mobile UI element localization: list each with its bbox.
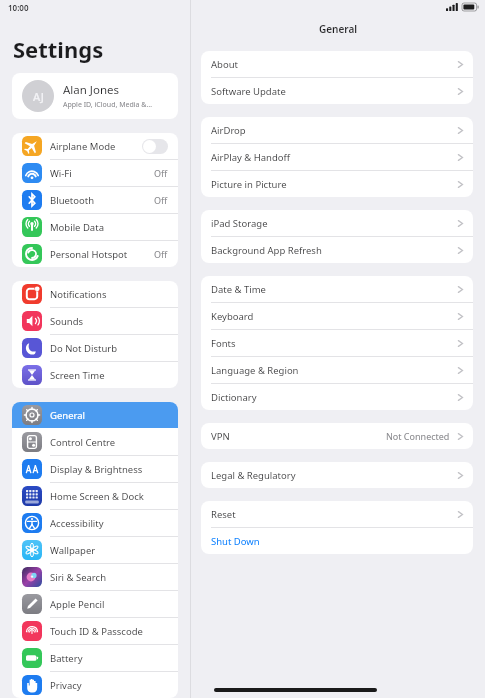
button[interactable]: Battery — [12, 645, 178, 671]
button[interactable]: Apple Pencil — [12, 591, 178, 617]
staticText: Screen Time — [50, 369, 168, 382]
staticText: Legal & Regulatory — [211, 469, 457, 482]
button[interactable]: Control Centre — [12, 429, 178, 455]
staticText: Language & Region — [211, 364, 457, 377]
staticText: Fonts — [211, 337, 457, 350]
staticText: Touch ID & Passcode — [50, 625, 168, 638]
staticText: AirPlay & Handoff — [211, 151, 457, 164]
staticText: Privacy — [50, 679, 168, 692]
staticText: Background App Refresh — [211, 244, 457, 257]
button[interactable]: Mobile Data — [12, 214, 178, 240]
staticText: Reset — [211, 508, 457, 521]
staticText: Wi-Fi — [50, 167, 154, 180]
button[interactable]: Language & Region — [201, 357, 473, 383]
staticText: Apple Pencil — [50, 598, 168, 611]
staticText: VPN — [211, 430, 386, 443]
button[interactable]: Background App Refresh — [201, 237, 473, 263]
staticText: Date & Time — [211, 283, 457, 296]
button[interactable]: Accessibility — [12, 510, 178, 536]
button[interactable]: Wallpaper — [12, 537, 178, 563]
button[interactable]: Legal & Regulatory — [201, 462, 473, 488]
staticText: 10:00 — [8, 2, 29, 13]
staticText: Dictionary — [211, 391, 457, 404]
staticText: Apple ID, iCloud, Media &… — [63, 100, 152, 110]
button[interactable]: iPad Storage — [201, 210, 473, 236]
button[interactable]: Privacy — [12, 672, 178, 698]
button[interactable]: Date & Time — [201, 276, 473, 302]
staticText: Personal Hotspot — [50, 248, 154, 261]
staticText: Do Not Disturb — [50, 342, 168, 355]
button[interactable]: Touch ID & Passcode — [12, 618, 178, 644]
staticText: Off — [154, 194, 168, 206]
staticText: Wallpaper — [50, 544, 168, 557]
button[interactable]: AJ — [12, 73, 178, 119]
button[interactable]: Fonts — [201, 330, 473, 356]
button[interactable]: Dictionary — [201, 384, 473, 410]
staticText: General — [191, 22, 485, 36]
staticText: Battery — [50, 652, 168, 665]
button[interactable]: Display & Brightness — [12, 456, 178, 482]
staticText: Off — [154, 167, 168, 179]
button[interactable]: Keyboard — [201, 303, 473, 329]
staticText: iPad Storage — [211, 217, 457, 230]
staticText: AirDrop — [211, 124, 457, 137]
staticText: Picture in Picture — [211, 178, 457, 191]
staticText: Mobile Data — [50, 221, 168, 234]
button[interactable]: Software Update — [201, 78, 473, 104]
staticText: Airplane Mode — [50, 140, 142, 153]
button[interactable]: General — [12, 402, 178, 428]
staticText: Bluetooth — [50, 194, 154, 207]
button[interactable]: Reset — [201, 501, 473, 527]
button[interactable]: Siri & Search — [12, 564, 178, 590]
button[interactable]: AirPlay & Handoff — [201, 144, 473, 170]
button[interactable]: Notifications — [12, 281, 178, 307]
button[interactable]: Personal Hotspot — [12, 241, 178, 267]
staticText: Keyboard — [211, 310, 457, 323]
button[interactable]: Home Screen & Dock — [12, 483, 178, 509]
button[interactable]: Bluetooth — [12, 187, 178, 213]
staticText: General — [50, 409, 168, 422]
button[interactable]: Airplane Mode — [12, 133, 178, 159]
button[interactable]: Sounds — [12, 308, 178, 334]
button[interactable]: Screen Time — [12, 362, 178, 388]
button[interactable]: AirDrop — [201, 117, 473, 143]
button[interactable]: Do Not Disturb — [12, 335, 178, 361]
staticText: Siri & Search — [50, 571, 168, 584]
button[interactable]: Shut Down — [201, 528, 473, 554]
staticText: Not Connected — [386, 430, 450, 442]
staticText: Control Centre — [50, 436, 168, 449]
staticText: AJ — [33, 89, 44, 104]
staticText: Notifications — [50, 288, 168, 301]
button[interactable]: About — [201, 51, 473, 77]
staticText: Sounds — [50, 315, 168, 328]
staticText: Off — [154, 248, 168, 260]
staticText: Shut Down — [211, 535, 464, 548]
button[interactable]: Wi-Fi — [12, 160, 178, 186]
staticText: Alan Jones — [63, 82, 120, 98]
staticText: Accessibility — [50, 517, 168, 530]
button[interactable]: Picture in Picture — [201, 171, 473, 197]
staticText: Software Update — [211, 85, 457, 98]
button[interactable]: VPN — [201, 423, 473, 449]
staticText: About — [211, 58, 457, 71]
staticText: Settings — [13, 34, 104, 64]
staticText: Home Screen & Dock — [50, 490, 168, 503]
staticText: Display & Brightness — [50, 463, 168, 476]
